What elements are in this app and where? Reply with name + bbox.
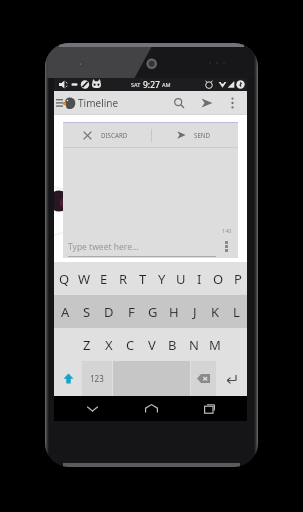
staticText: 140 xyxy=(222,227,232,234)
button[interactable]: U xyxy=(171,262,190,295)
button[interactable]: Hide keyboard xyxy=(72,396,112,421)
staticText: O xyxy=(213,270,224,288)
staticText: P xyxy=(234,270,242,288)
staticText: Timeline xyxy=(78,96,119,110)
button[interactable]: R xyxy=(114,262,133,295)
staticText: D xyxy=(104,303,114,321)
button[interactable]: I xyxy=(190,262,209,295)
button[interactable]: Open navigation drawer xyxy=(54,91,64,115)
button[interactable]: Q xyxy=(54,262,74,295)
staticText: DISCARD xyxy=(101,131,128,139)
button[interactable]: X xyxy=(98,328,120,361)
staticText: L xyxy=(233,303,240,321)
button[interactable]: Home xyxy=(131,396,171,421)
button[interactable]: K xyxy=(205,295,226,328)
button[interactable]: W xyxy=(74,262,94,295)
button[interactable]: Shift xyxy=(54,361,82,396)
staticText: 9:27 xyxy=(143,79,160,91)
staticText: I xyxy=(197,270,202,288)
button[interactable]: DISCARD xyxy=(63,122,151,148)
staticText: N xyxy=(189,336,199,354)
staticText: Q xyxy=(59,270,70,288)
staticText: A xyxy=(61,303,70,321)
staticText: R xyxy=(119,270,128,288)
staticText: Type tweet here... xyxy=(68,241,139,253)
button[interactable]: A xyxy=(54,295,76,328)
button[interactable]: V xyxy=(141,328,162,361)
button[interactable]: More options xyxy=(223,91,242,115)
button[interactable]: Enter xyxy=(216,361,247,396)
staticText: 123 xyxy=(90,373,104,384)
staticText: SAT xyxy=(131,81,141,88)
button[interactable]: Delete xyxy=(191,361,216,396)
button[interactable]: G xyxy=(142,295,163,328)
staticText: T xyxy=(139,270,147,288)
button[interactable]: Z xyxy=(76,328,98,361)
button[interactable]: B xyxy=(162,328,183,361)
staticText: S xyxy=(83,303,91,321)
staticText: H xyxy=(169,303,179,321)
staticText: W xyxy=(78,270,91,288)
staticText: K xyxy=(211,303,220,321)
button[interactable]: L xyxy=(226,295,247,328)
staticText: F xyxy=(128,303,135,321)
button[interactable]: Recent apps xyxy=(189,396,229,421)
staticText: J xyxy=(193,303,197,321)
staticText: Y xyxy=(158,270,166,288)
staticText: AM xyxy=(162,81,171,88)
button[interactable]: E xyxy=(94,262,114,295)
button[interactable]: Search xyxy=(168,91,190,115)
staticText: Z xyxy=(83,336,91,354)
staticText: SEND xyxy=(194,131,211,139)
staticText: B xyxy=(168,336,177,354)
button[interactable]: Y xyxy=(152,262,171,295)
staticText: U xyxy=(176,270,186,288)
button[interactable]: F xyxy=(120,295,142,328)
button[interactable]: O xyxy=(209,262,228,295)
button[interactable]: H xyxy=(163,295,184,328)
button[interactable]: Compose tweet xyxy=(196,91,218,115)
button[interactable]: M xyxy=(204,328,225,361)
button[interactable]: T xyxy=(133,262,152,295)
staticText: C xyxy=(126,336,135,354)
button[interactable]: C xyxy=(120,328,141,361)
button[interactable]: P xyxy=(228,262,247,295)
staticText: M xyxy=(209,336,221,354)
button[interactable]: J xyxy=(184,295,205,328)
button[interactable]: 123 xyxy=(82,361,112,396)
staticText: X xyxy=(105,336,113,354)
button[interactable]: D xyxy=(98,295,120,328)
button[interactable]: S xyxy=(76,295,98,328)
button[interactable]: N xyxy=(183,328,204,361)
staticText: G xyxy=(148,303,158,321)
staticText: E xyxy=(100,270,108,288)
staticText: V xyxy=(148,336,156,354)
button[interactable]: SEND xyxy=(152,122,238,148)
